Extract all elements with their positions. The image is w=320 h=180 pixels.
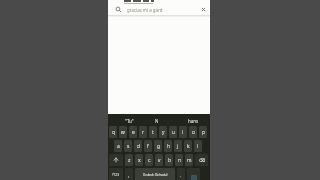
staticText: p	[202, 129, 205, 136]
staticText: N	[155, 118, 159, 124]
button[interactable]: h	[164, 140, 172, 152]
button[interactable]: ⌫	[195, 154, 208, 166]
button[interactable]: l	[194, 140, 202, 152]
staticText: z	[128, 157, 131, 164]
staticText: e	[132, 129, 135, 136]
staticText: h	[167, 143, 170, 150]
staticText: k	[187, 143, 190, 150]
button[interactable]: k	[184, 140, 192, 152]
button[interactable]: u	[169, 126, 177, 138]
staticText: j	[177, 143, 179, 150]
button[interactable]: "Tu"	[125, 118, 134, 124]
button[interactable]: q	[109, 126, 117, 138]
button[interactable]: g	[154, 140, 162, 152]
staticText: "Tu"	[125, 118, 134, 124]
button[interactable]: f	[144, 140, 152, 152]
staticText: Deutsch (Schweiz)	[143, 173, 168, 177]
staticText: t	[152, 129, 154, 136]
button[interactable]: y	[159, 126, 167, 138]
staticText: .	[180, 172, 182, 178]
button[interactable]: w	[119, 126, 127, 138]
staticText: o	[192, 129, 195, 136]
button[interactable]: i	[179, 126, 187, 138]
staticText: n	[178, 157, 181, 164]
button[interactable]: m	[185, 154, 193, 166]
button[interactable]: v	[155, 154, 163, 166]
staticText: u	[172, 129, 175, 136]
button[interactable]: e	[129, 126, 137, 138]
button[interactable]: ,	[125, 168, 133, 180]
staticText: gracias mi a gard	[127, 7, 163, 13]
staticText: hans	[188, 118, 198, 124]
button[interactable]: t	[149, 126, 157, 138]
staticText: y	[162, 129, 165, 136]
button[interactable]: r	[139, 126, 147, 138]
staticText: b	[168, 157, 171, 164]
staticText: c	[148, 157, 151, 164]
button[interactable]: o	[189, 126, 197, 138]
button[interactable]	[187, 168, 200, 180]
staticText: g	[157, 143, 160, 150]
button[interactable]: ?123	[109, 168, 123, 180]
button[interactable]: a	[114, 140, 122, 152]
staticText: ⌫	[199, 158, 205, 163]
button[interactable]: z	[125, 154, 133, 166]
button[interactable]: b	[165, 154, 173, 166]
button[interactable]: .	[177, 168, 185, 180]
button[interactable]	[109, 154, 123, 166]
button[interactable]: N	[155, 118, 159, 124]
button[interactable]: Deutsch (Schweiz)	[135, 168, 175, 180]
staticText: l	[197, 143, 199, 150]
staticText: r	[142, 129, 144, 136]
button[interactable]: n	[175, 154, 183, 166]
staticText: i	[182, 129, 184, 136]
staticText: w	[121, 129, 125, 136]
button[interactable]: hans	[188, 118, 198, 124]
button[interactable]: x	[135, 154, 143, 166]
staticText: m	[187, 157, 192, 164]
button[interactable]: s	[124, 140, 132, 152]
staticText: q	[112, 129, 115, 136]
staticText: f	[147, 143, 149, 150]
button[interactable]: gracias mi a gard	[108, 4, 210, 15]
staticText: v	[158, 157, 161, 164]
staticText: s	[127, 143, 130, 150]
staticText: d	[137, 143, 140, 150]
staticText: ,	[128, 172, 130, 178]
staticText: ?123	[112, 172, 120, 177]
button[interactable]: p	[199, 126, 207, 138]
staticText: a	[117, 143, 120, 150]
staticText: x	[138, 157, 141, 164]
button[interactable]: j	[174, 140, 182, 152]
button[interactable]: d	[134, 140, 142, 152]
button[interactable]: c	[145, 154, 153, 166]
